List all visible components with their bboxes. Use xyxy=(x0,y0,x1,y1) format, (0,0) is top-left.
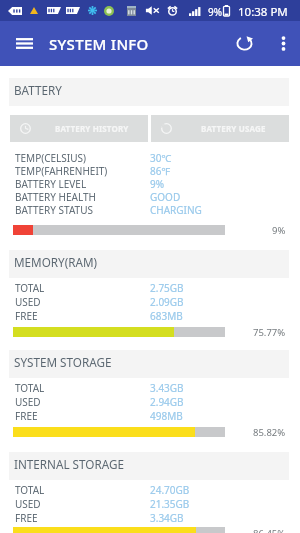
staticText: SYSTEM INFO xyxy=(49,34,149,54)
staticText: USED xyxy=(15,295,41,309)
staticText: FREE xyxy=(15,409,38,423)
staticText: 9% xyxy=(150,177,165,190)
staticText: 683MB xyxy=(150,309,183,323)
staticText: BATTERY STATUS xyxy=(15,203,93,216)
button[interactable]: BATTERY HISTORY xyxy=(10,115,148,142)
staticText: CHARGING xyxy=(150,203,202,216)
staticText: 9% xyxy=(272,224,286,237)
staticText: 75.77% xyxy=(253,326,286,339)
button[interactable]: More options xyxy=(266,21,300,66)
staticText: 10:38 PM xyxy=(238,4,288,20)
staticText: BATTERY USAGE xyxy=(201,123,266,134)
staticText: FREE xyxy=(15,511,38,525)
staticText: 21.35GB xyxy=(150,497,190,511)
staticText: 85.82% xyxy=(253,426,286,439)
staticText: 2.09GB xyxy=(150,295,184,309)
staticText: FREE xyxy=(15,309,38,323)
button[interactable]: Open navigation menu xyxy=(0,21,49,66)
staticText: 2.75GB xyxy=(150,281,184,295)
staticText: 3.34GB xyxy=(150,511,184,525)
staticText: BATTERY xyxy=(14,82,62,98)
staticText: BATTERY LEVEL xyxy=(15,177,87,190)
staticText: 86℉ xyxy=(150,164,171,177)
staticText: 3.43GB xyxy=(150,381,184,395)
staticText: SYSTEM STORAGE xyxy=(14,354,112,370)
staticText: GOOD xyxy=(150,190,181,203)
staticText: USED xyxy=(15,497,41,511)
staticText: TOTAL xyxy=(15,381,45,395)
staticText: INTERNAL STORAGE xyxy=(14,456,124,472)
staticText: BATTERY HEALTH xyxy=(15,190,96,203)
staticText: TEMP(FAHRENHEIT) xyxy=(15,164,108,177)
staticText: 498MB xyxy=(150,409,183,423)
staticText: TOTAL xyxy=(15,281,45,295)
staticText: TEMP(CELSIUS) xyxy=(15,151,87,164)
staticText: 2.94GB xyxy=(150,395,184,409)
staticText: BATTERY HISTORY xyxy=(55,123,129,134)
staticText: MEMORY(RAM) xyxy=(14,254,98,270)
staticText: 24.70GB xyxy=(150,483,190,497)
staticText: 30℃ xyxy=(150,151,172,164)
button[interactable]: BATTERY USAGE xyxy=(151,115,289,142)
button[interactable]: Refresh xyxy=(222,21,266,66)
staticText: 9% xyxy=(208,5,223,19)
staticText: USED xyxy=(15,395,41,409)
staticText: 86.45% xyxy=(253,527,286,533)
staticText: TOTAL xyxy=(15,483,45,497)
